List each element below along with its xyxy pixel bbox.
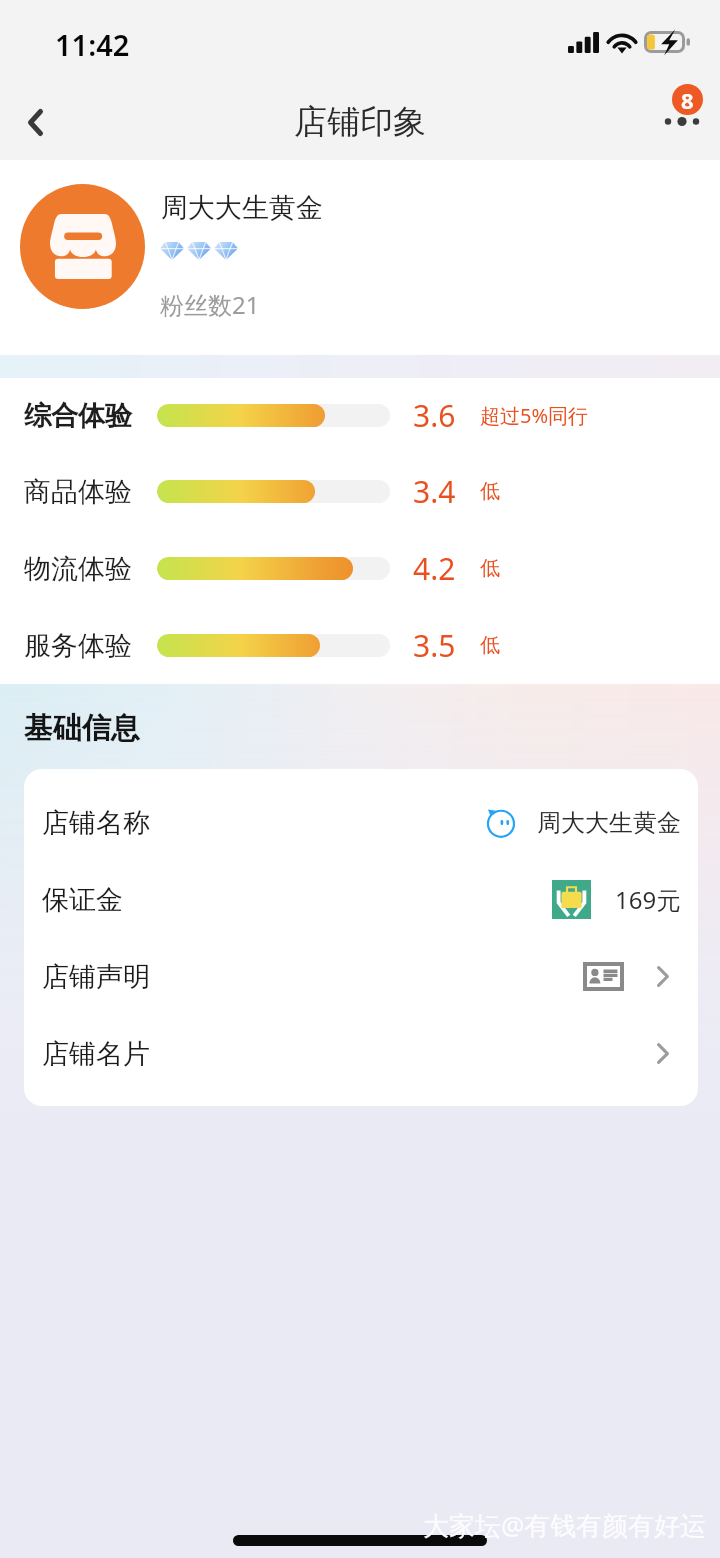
staticText: 综合体验 xyxy=(24,399,132,433)
staticText: 服务体验 xyxy=(24,629,132,663)
staticText: 3.4 xyxy=(413,471,456,512)
staticText: 周大大生黄金 xyxy=(537,808,681,838)
staticText: 店铺名称 xyxy=(42,806,150,840)
button[interactable]: More options xyxy=(624,84,720,160)
staticText: 大家坛@有钱有颜有好运 xyxy=(423,1507,707,1543)
staticText: 低 xyxy=(480,633,500,658)
staticText: 保证金 xyxy=(42,883,123,917)
button[interactable]: 店铺名称 xyxy=(24,784,698,861)
staticText: 11:42 xyxy=(55,25,130,64)
staticText: 169元 xyxy=(615,883,681,916)
button[interactable]: Back xyxy=(0,84,70,160)
staticText: 3.5 xyxy=(413,625,456,666)
staticText: 商品体验 xyxy=(24,475,132,509)
staticText: 低 xyxy=(480,556,500,581)
staticText: 低 xyxy=(480,479,500,504)
staticText: 粉丝数21 xyxy=(160,288,260,321)
staticText: 店铺印象 xyxy=(294,101,426,143)
staticText: 超过5%同行 xyxy=(480,402,589,429)
staticText: 基础信息 xyxy=(24,710,140,747)
button[interactable]: 保证金 xyxy=(24,861,698,938)
staticText: 4.2 xyxy=(413,548,456,589)
button[interactable]: 店铺声明 xyxy=(24,938,698,1015)
staticText: 店铺名片 xyxy=(42,1037,150,1071)
staticText: 物流体验 xyxy=(24,552,132,586)
staticText: 8 xyxy=(681,85,694,115)
staticText: 店铺声明 xyxy=(42,960,150,994)
staticText: 周大大生黄金 xyxy=(161,191,323,225)
staticText: 3.6 xyxy=(413,395,456,436)
button[interactable]: 店铺名片 xyxy=(24,1015,698,1092)
